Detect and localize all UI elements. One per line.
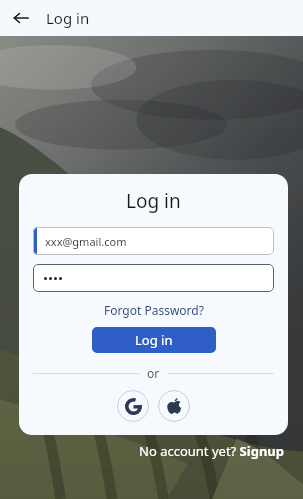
staticText: Log in (135, 331, 173, 349)
button[interactable] (33, 264, 274, 292)
staticText: Log in (46, 8, 90, 28)
button[interactable]: xxx@gmail.com (33, 227, 274, 255)
button[interactable]: Sign in with Apple (158, 390, 190, 422)
staticText: or (147, 365, 160, 381)
button[interactable]: No account yet? Signup (0, 442, 284, 460)
staticText: xxx@gmail.com (45, 234, 127, 249)
button[interactable]: Forgot Password? (100, 300, 208, 320)
staticText: No account yet? Signup (139, 442, 284, 460)
button[interactable]: Sign in with Google (117, 390, 149, 422)
staticText: Forgot Password? (104, 302, 204, 318)
button[interactable]: Back (6, 3, 36, 33)
staticText: Log in (126, 188, 181, 214)
button[interactable]: Log in (92, 327, 216, 353)
